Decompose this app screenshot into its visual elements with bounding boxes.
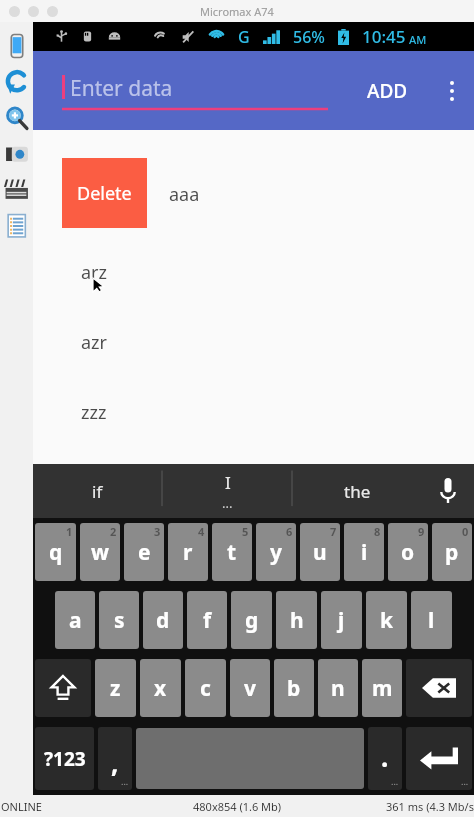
- staticText: 4: [198, 524, 205, 539]
- button[interactable]: i: [344, 523, 384, 581]
- button[interactable]: Emulator tool 1: [4, 69, 30, 95]
- staticText: c: [200, 674, 211, 703]
- button[interactable]: Enter: [406, 727, 472, 790]
- staticText: n: [331, 674, 345, 703]
- staticText: 480x854 (1.6 Mb): [193, 799, 282, 814]
- staticText: x: [154, 674, 167, 703]
- staticText: t: [227, 538, 237, 567]
- button[interactable]: the: [292, 464, 422, 518]
- staticText: AM: [409, 32, 427, 47]
- button[interactable]: Emulator tool 2: [4, 105, 30, 131]
- button[interactable]: n: [318, 659, 358, 717]
- staticText: ...: [391, 775, 399, 787]
- staticText: ...: [461, 775, 469, 787]
- button[interactable]: x: [140, 659, 181, 717]
- button[interactable]: Enter data: [62, 71, 328, 113]
- staticText: arz: [81, 260, 107, 285]
- button[interactable]: Shift: [35, 659, 91, 717]
- staticText: 8: [374, 524, 381, 539]
- staticText: d: [156, 606, 170, 635]
- staticText: v: [244, 674, 256, 703]
- button[interactable]: Comma: [98, 727, 132, 790]
- staticText: 1: [66, 524, 73, 539]
- button[interactable]: f: [187, 591, 227, 649]
- staticText: 10:45: [362, 25, 406, 48]
- staticText: b: [287, 674, 301, 703]
- staticText: ...: [222, 494, 233, 512]
- button[interactable]: c: [185, 659, 226, 717]
- staticText: s: [114, 606, 125, 635]
- staticText: the: [344, 480, 371, 503]
- staticText: zzz: [81, 400, 107, 425]
- button[interactable]: a: [55, 591, 95, 649]
- staticText: a: [69, 606, 82, 635]
- staticText: r: [183, 538, 193, 567]
- staticText: 2: [110, 524, 117, 539]
- staticText: 5: [242, 524, 249, 539]
- button[interactable]: Delete: [62, 158, 147, 228]
- staticText: Micromax A74: [200, 4, 274, 19]
- staticText: z: [110, 674, 121, 703]
- staticText: 7: [330, 524, 337, 539]
- button[interactable]: Voice input: [422, 464, 474, 518]
- button[interactable]: g: [231, 591, 272, 649]
- button[interactable]: Period: [368, 727, 402, 790]
- button[interactable]: k: [366, 591, 407, 649]
- button[interactable]: arz: [33, 250, 474, 302]
- button[interactable]: l: [411, 591, 452, 649]
- staticText: j: [338, 606, 345, 635]
- button[interactable]: t: [212, 523, 252, 581]
- button[interactable]: ?123: [35, 727, 94, 790]
- staticText: m: [372, 674, 393, 703]
- button[interactable]: s: [99, 591, 139, 649]
- staticText: 6: [286, 524, 293, 539]
- staticText: e: [138, 538, 151, 567]
- button[interactable]: Backspace: [406, 659, 472, 717]
- button[interactable]: I: [162, 464, 292, 518]
- button[interactable]: j: [321, 591, 362, 649]
- button[interactable]: q: [35, 523, 76, 581]
- staticText: ...: [121, 775, 129, 787]
- button[interactable]: More options: [442, 73, 462, 109]
- button[interactable]: v: [230, 659, 270, 717]
- button[interactable]: u: [300, 523, 340, 581]
- staticText: h: [290, 606, 304, 635]
- staticText: 9: [418, 524, 425, 539]
- button[interactable]: w: [80, 523, 120, 581]
- staticText: Delete: [77, 181, 132, 206]
- button[interactable]: o: [388, 523, 428, 581]
- staticText: o: [401, 538, 415, 567]
- button[interactable]: y: [256, 523, 296, 581]
- staticText: 3: [154, 524, 161, 539]
- button[interactable]: Emulator tool 4: [4, 177, 30, 203]
- staticText: 56%: [293, 26, 325, 48]
- staticText: 0: [462, 524, 469, 539]
- staticText: k: [380, 606, 394, 635]
- staticText: azr: [81, 330, 107, 355]
- button[interactable]: Emulator tool 5: [4, 213, 30, 239]
- button[interactable]: r: [168, 523, 208, 581]
- button[interactable]: zzz: [33, 390, 474, 442]
- button[interactable]: azr: [33, 320, 474, 372]
- staticText: G: [238, 26, 250, 48]
- button[interactable]: z: [95, 659, 136, 717]
- button[interactable]: ADD: [361, 72, 414, 110]
- staticText: g: [245, 606, 259, 635]
- button[interactable]: Emulator tool 3: [4, 141, 30, 167]
- button[interactable]: Emulator tool 0: [4, 33, 30, 59]
- staticText: ADD: [367, 78, 408, 104]
- staticText: q: [49, 538, 63, 567]
- button[interactable]: b: [274, 659, 314, 717]
- button[interactable]: p: [432, 523, 472, 581]
- staticText: ONLINE: [1, 799, 42, 814]
- button[interactable]: h: [276, 591, 317, 649]
- staticText: ?123: [44, 746, 86, 772]
- button[interactable]: m: [362, 659, 402, 717]
- button[interactable]: if: [33, 464, 162, 518]
- button[interactable]: e: [124, 523, 164, 581]
- staticText: l: [428, 606, 435, 635]
- staticText: Enter data: [70, 74, 173, 103]
- staticText: aaa: [169, 182, 200, 207]
- button[interactable]: d: [143, 591, 183, 649]
